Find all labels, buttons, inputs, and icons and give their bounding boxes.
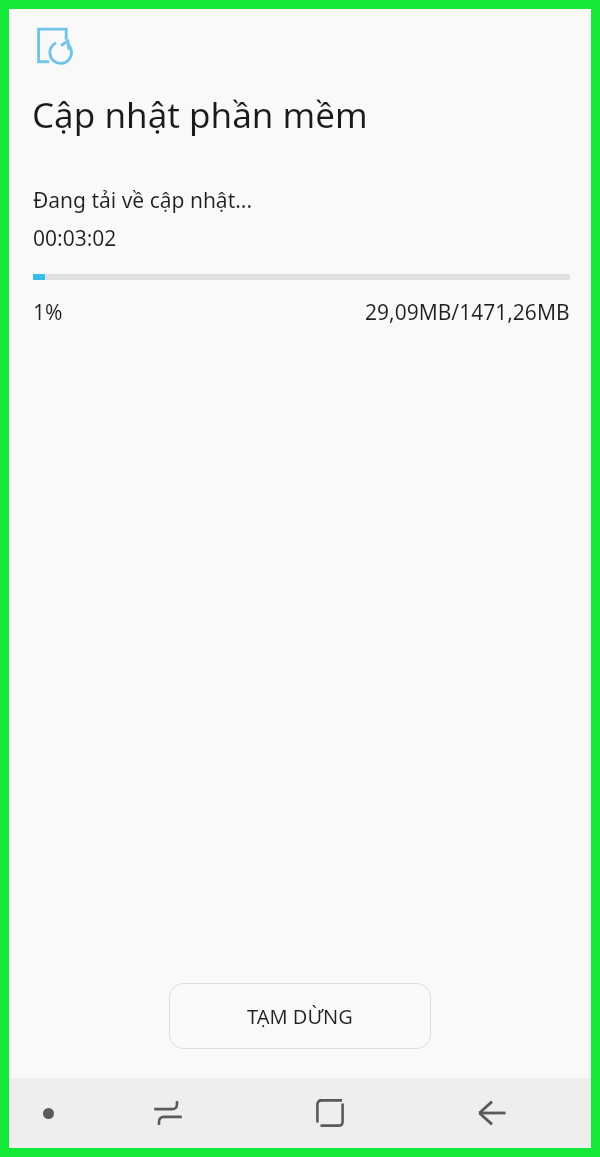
staticText: TẠM DỪNG xyxy=(247,1003,353,1030)
button[interactable]: Home xyxy=(249,1078,411,1148)
staticText: Cập nhật phần mềm xyxy=(32,91,368,139)
staticText: Đang tải về cập nhật... xyxy=(33,186,253,215)
staticText: 1% xyxy=(33,298,63,327)
staticText: 00:03:02 xyxy=(33,224,117,253)
button[interactable]: Indicator xyxy=(9,1078,87,1148)
button[interactable]: Recents xyxy=(87,1078,249,1148)
button[interactable]: TẠM DỪNG xyxy=(169,983,431,1049)
staticText: 29,09MB/1471,26MB xyxy=(365,298,570,327)
button[interactable]: Back xyxy=(411,1078,573,1148)
